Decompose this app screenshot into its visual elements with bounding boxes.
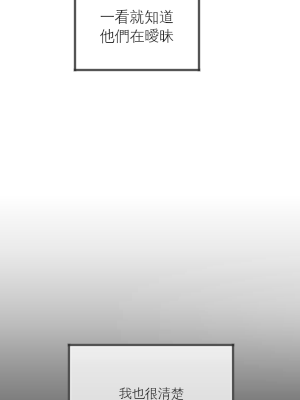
button[interactable]: 一看就知道 — [74, 0, 200, 71]
button[interactable]: 我也很清楚 — [68, 344, 234, 400]
staticText: 一看就知道 — [100, 8, 174, 27]
staticText: 他們在曖昧 — [100, 27, 174, 46]
staticText: 我也很清楚 — [119, 386, 184, 400]
